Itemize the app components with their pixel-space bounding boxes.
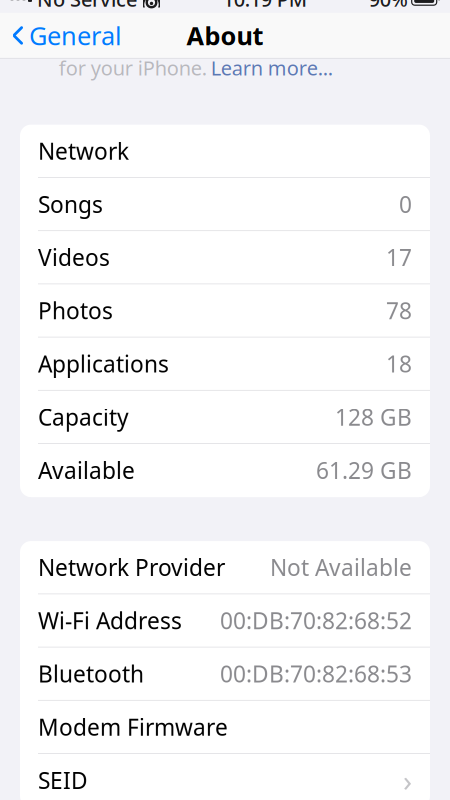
staticText: General (29, 19, 122, 52)
staticText: SEID (38, 765, 88, 795)
staticText: Network (38, 136, 129, 166)
staticText: Applications (38, 349, 169, 379)
staticText: Wi-Fi Address (38, 605, 182, 635)
button[interactable]: Applications (20, 337, 430, 391)
staticText: Photos (38, 295, 113, 325)
staticText: 10:19 PM (223, 0, 307, 12)
button[interactable]: Songs (20, 178, 430, 231)
staticText: Not Available (270, 552, 412, 582)
staticText: 61.29 GB (316, 455, 412, 485)
staticText: Bluetooth (38, 659, 144, 689)
staticText: About (186, 19, 263, 52)
button[interactable]: Network (20, 125, 430, 178)
button[interactable]: SEID (20, 754, 430, 800)
button[interactable]: Available (20, 444, 430, 497)
staticText: 78 (386, 295, 412, 325)
staticText: › (403, 761, 412, 800)
staticText: Modem Firmware (38, 712, 228, 742)
staticText: 0 (399, 189, 412, 219)
staticText: 90% (369, 0, 408, 12)
staticText: No Service (37, 0, 137, 12)
button[interactable]: Capacity (20, 391, 430, 444)
staticText: 18 (386, 349, 412, 379)
button[interactable]: General (0, 13, 122, 58)
staticText: Available (38, 455, 135, 485)
button[interactable]: Modem Firmware (20, 701, 430, 754)
staticText: 128 GB (335, 402, 412, 432)
button[interactable]: Wi-Fi Address (20, 594, 430, 647)
staticText: Network Provider (38, 552, 225, 582)
button[interactable]: Network Provider (20, 541, 430, 594)
staticText: Learn more... (211, 54, 333, 81)
staticText: for your iPhone. (59, 54, 207, 81)
staticText: 17 (386, 242, 412, 272)
button[interactable]: Photos (20, 284, 430, 337)
staticText: 00:DB:70:82:68:53 (220, 659, 412, 689)
button[interactable]: Videos (20, 231, 430, 284)
staticText: Songs (38, 189, 103, 219)
staticText: Videos (38, 242, 110, 272)
staticText: 00:DB:70:82:68:52 (220, 605, 412, 635)
staticText: Capacity (38, 402, 129, 432)
button[interactable]: Bluetooth (20, 647, 430, 701)
